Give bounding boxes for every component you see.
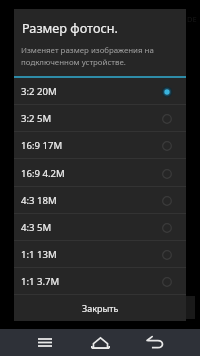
staticText: 4:3 18M xyxy=(21,194,161,207)
button[interactable]: Back xyxy=(143,329,166,356)
button[interactable]: 4:3 18M xyxy=(14,187,186,214)
staticText: Закрыть xyxy=(82,302,119,314)
staticText: Размер фотосн. xyxy=(22,19,118,36)
button[interactable]: 4:3 5M xyxy=(14,214,186,241)
button[interactable]: 3:2 5M xyxy=(14,105,186,132)
staticText: Изменяет размер изображения на подключен… xyxy=(21,45,154,67)
button[interactable]: Home xyxy=(88,329,112,356)
staticText: 3:2 20M xyxy=(21,85,161,98)
staticText: 16:9 17M xyxy=(21,139,161,152)
staticText: 4:3 5M xyxy=(21,221,161,234)
staticText: 16:9 4.2M xyxy=(21,167,161,180)
staticText: 3:2 5M xyxy=(21,112,161,125)
button[interactable]: 1:1 3.7M xyxy=(14,268,186,295)
button[interactable]: Recent apps xyxy=(33,329,56,356)
staticText: 1:1 3.7M xyxy=(21,275,161,288)
button[interactable]: 16:9 17M xyxy=(14,132,186,159)
button[interactable]: 16:9 4.2M xyxy=(14,160,186,187)
staticText: 1:1 13M xyxy=(21,248,161,261)
button[interactable]: 1:1 13M xyxy=(14,241,186,268)
button[interactable]: Закрыть xyxy=(14,295,186,320)
staticText: DE xyxy=(187,14,197,24)
button[interactable]: 3:2 20M xyxy=(14,78,186,105)
